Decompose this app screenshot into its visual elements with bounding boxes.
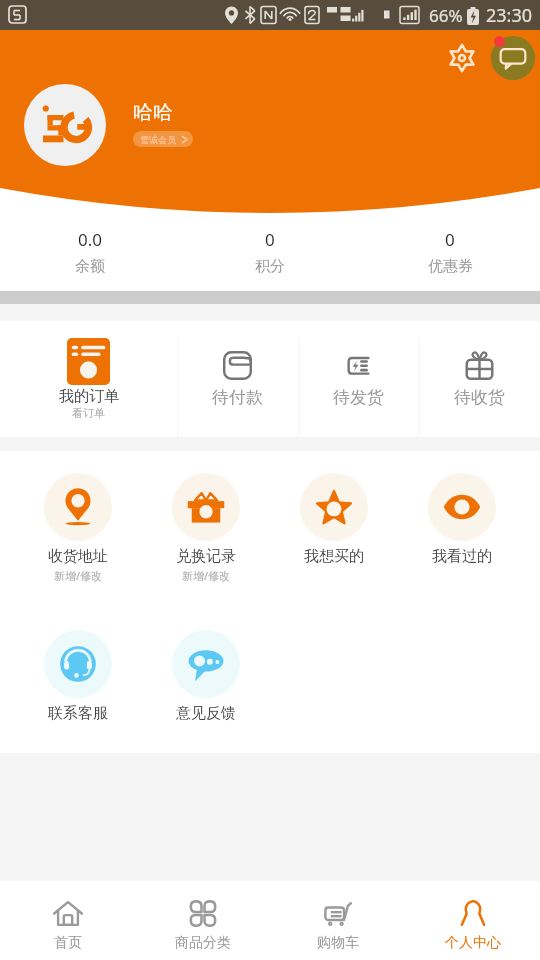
button[interactable]: 雪诚会员 (133, 131, 193, 147)
button[interactable]: 待发货 (298, 321, 419, 437)
staticText: 优惠券 (428, 257, 473, 276)
button[interactable]: 我的订单 (0, 321, 177, 437)
button[interactable]: Messages (489, 34, 537, 82)
staticText: 哈哈 (133, 100, 173, 125)
button[interactable]: 个人中心 (405, 881, 540, 960)
button[interactable]: 0.0 (0, 213, 180, 291)
staticText: 兑换记录 (176, 547, 236, 566)
staticText: 我的订单 (59, 387, 119, 406)
staticText: 待收货 (454, 387, 505, 408)
button[interactable]: 联系客服 (14, 630, 142, 723)
staticText: 0 (265, 228, 275, 251)
button[interactable]: 购物车 (270, 881, 405, 960)
staticText: 待付款 (212, 387, 263, 408)
button[interactable]: 0 (180, 213, 360, 291)
staticText: 首页 (54, 934, 82, 952)
button[interactable]: Settings (440, 36, 484, 80)
staticText: 新增/修改 (54, 568, 103, 583)
button[interactable]: 0 (360, 213, 540, 291)
staticText: 余额 (75, 257, 105, 276)
button[interactable] (24, 84, 106, 166)
staticText: 66% (429, 4, 463, 27)
staticText: 意见反馈 (176, 704, 236, 723)
staticText: 待发货 (333, 387, 384, 408)
button[interactable]: 兑换记录 (142, 473, 270, 583)
staticText: 积分 (255, 257, 285, 276)
staticText: 我看过的 (432, 547, 492, 566)
button[interactable]: 意见反馈 (142, 630, 270, 723)
staticText: 收货地址 (48, 547, 108, 566)
staticText: 商品分类 (175, 934, 231, 952)
staticText: 我想买的 (304, 547, 364, 566)
staticText: 个人中心 (445, 934, 501, 952)
button[interactable]: 商品分类 (135, 881, 270, 960)
button[interactable]: 待收货 (419, 321, 540, 437)
button[interactable]: 待付款 (177, 321, 298, 437)
staticText: 雪诚会员 (140, 134, 176, 145)
button[interactable]: 我看过的 (398, 473, 526, 566)
staticText: 联系客服 (48, 704, 108, 723)
button[interactable]: 我想买的 (270, 473, 398, 566)
staticText: 0 (445, 228, 455, 251)
staticText: 购物车 (317, 934, 359, 952)
staticText: 0.0 (78, 228, 103, 251)
staticText: 看订单 (72, 406, 105, 420)
button[interactable]: 首页 (0, 881, 135, 960)
button[interactable]: 收货地址 (14, 473, 142, 583)
staticText: 23:30 (486, 3, 533, 28)
staticText: 新增/修改 (182, 568, 231, 583)
